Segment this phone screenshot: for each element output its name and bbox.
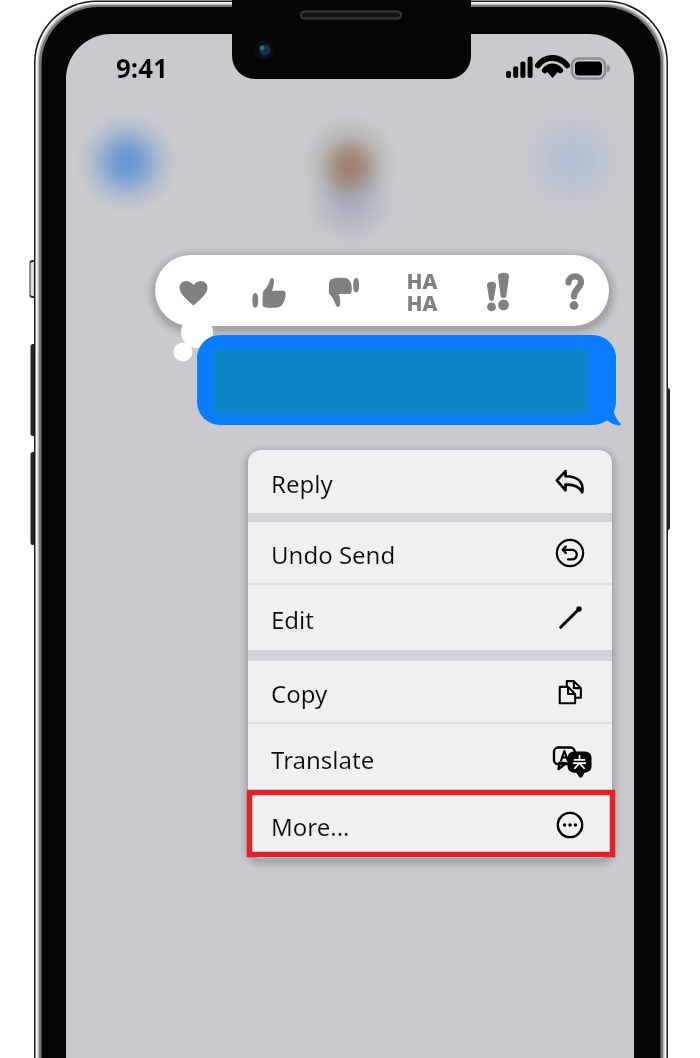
staticText: 9:41 [116,50,168,85]
button[interactable]: Reply [248,450,612,513]
staticText: Translate [271,743,375,776]
button[interactable]: Reactions [155,255,609,326]
staticText: Copy [271,677,328,710]
button[interactable]: Copy [248,661,612,722]
staticText: Edit [271,603,314,636]
button[interactable]: Translate [248,724,612,791]
staticText: Reply [271,467,333,500]
button[interactable]: Undo Send [248,522,612,583]
staticText: Undo Send [271,538,396,571]
button[interactable]: More... [248,791,612,858]
staticText: HA HA [397,267,447,317]
staticText: More... [271,810,350,843]
button[interactable]: Edit [248,585,612,650]
